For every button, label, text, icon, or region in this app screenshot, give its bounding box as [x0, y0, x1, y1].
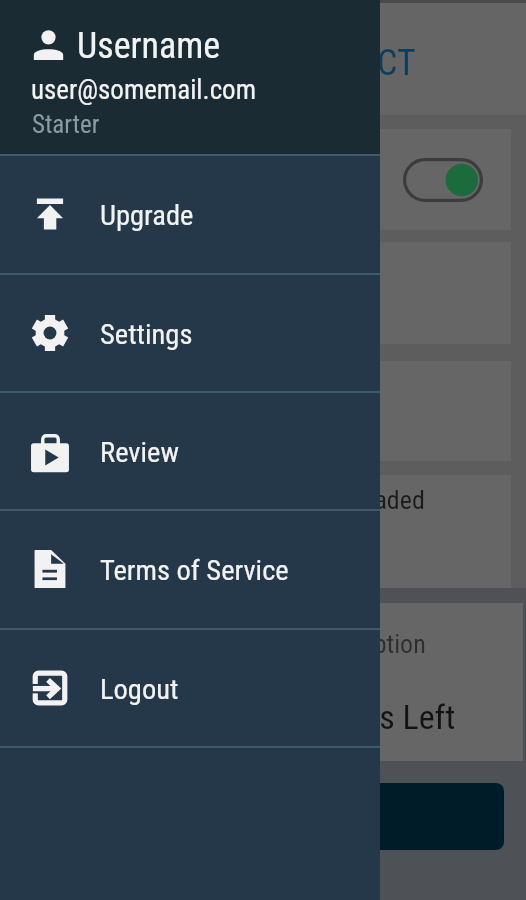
- staticText: Settings: [100, 318, 193, 351]
- staticText: Subscription: [297, 629, 426, 659]
- button[interactable]: Settings: [0, 275, 380, 392]
- staticText: Terms of Service: [100, 554, 289, 587]
- button[interactable]: Upgrade: [0, 156, 380, 273]
- staticText: Review: [100, 436, 179, 469]
- staticText: Logout: [100, 673, 179, 706]
- staticText: Starter: [32, 110, 100, 139]
- button[interactable]: Review: [0, 393, 380, 510]
- staticText: Upgrade: [100, 199, 194, 232]
- staticText: Username: [77, 25, 221, 67]
- staticText: PROJECT: [281, 42, 416, 84]
- button[interactable]: Terms of Service: [0, 511, 380, 628]
- staticText: Downloaded: [298, 485, 425, 515]
- staticText: 5 Days Left: [305, 697, 456, 737]
- button[interactable]: [24, 783, 504, 850]
- staticText: user@somemail.com: [31, 74, 256, 106]
- button[interactable]: Logout: [0, 630, 380, 747]
